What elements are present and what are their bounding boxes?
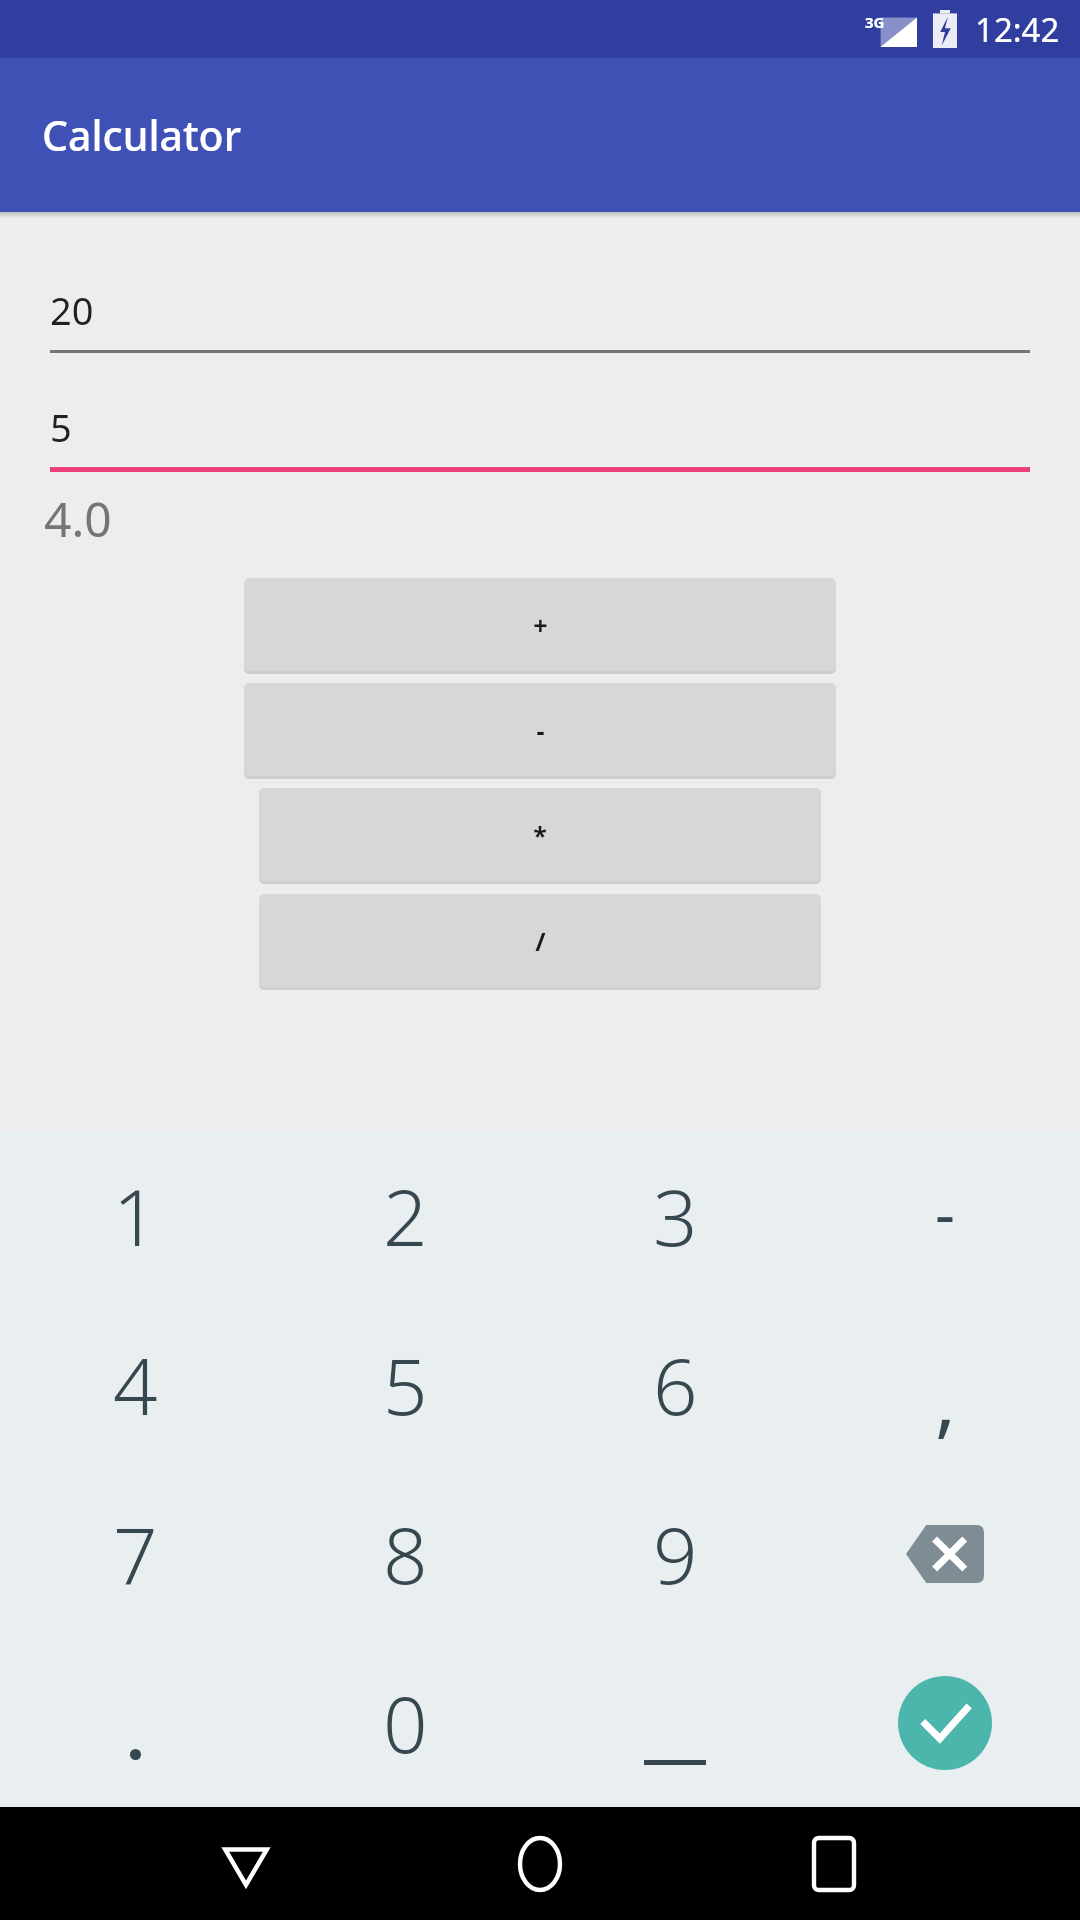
button[interactable]: -	[244, 683, 836, 776]
button[interactable]: 3	[540, 1131, 810, 1300]
staticText: 20	[50, 284, 94, 336]
staticText: ,	[935, 1346, 956, 1452]
staticText: 9	[653, 1501, 698, 1607]
button[interactable]: 0	[270, 1638, 540, 1807]
button[interactable]: Backspace	[810, 1469, 1080, 1638]
staticText: 5	[50, 401, 72, 453]
button[interactable]: 7	[0, 1469, 270, 1638]
staticText: Calculator	[42, 107, 242, 163]
staticText: 7	[113, 1501, 158, 1607]
staticText: 12:42	[975, 7, 1060, 52]
button[interactable]: 4	[0, 1300, 270, 1469]
button[interactable]: 1	[0, 1131, 270, 1300]
staticText: -	[935, 1170, 955, 1254]
staticText: /	[535, 924, 546, 958]
button[interactable]: Enter	[810, 1638, 1080, 1807]
button[interactable]	[0, 1638, 270, 1807]
staticText: 4.0	[44, 486, 112, 551]
button[interactable]: *	[259, 788, 821, 881]
button[interactable]: 9	[540, 1469, 810, 1638]
button[interactable]: 5	[50, 401, 1030, 472]
staticText: 0	[383, 1670, 428, 1776]
button[interactable]: Back	[198, 1816, 294, 1912]
staticText: *	[533, 818, 547, 852]
button[interactable]: 5	[270, 1300, 540, 1469]
button[interactable]: /	[259, 894, 821, 987]
button[interactable]: ,	[810, 1300, 1080, 1469]
button[interactable]: 20	[50, 284, 1030, 353]
staticText: 5	[383, 1332, 428, 1438]
button[interactable]: +	[244, 578, 836, 671]
button[interactable]: Recent apps	[786, 1816, 882, 1912]
staticText: 3G	[865, 12, 885, 32]
button[interactable]: 6	[540, 1300, 810, 1469]
button[interactable]: 2	[270, 1131, 540, 1300]
staticText: +	[533, 608, 548, 642]
staticText: 2	[383, 1163, 428, 1269]
staticText: 8	[383, 1501, 428, 1607]
button[interactable]: 8	[270, 1469, 540, 1638]
staticText: 1	[113, 1163, 158, 1269]
button[interactable]: Space	[540, 1638, 810, 1807]
staticText: 3	[653, 1163, 698, 1269]
staticText: -	[536, 713, 545, 747]
staticText: 4	[113, 1332, 158, 1438]
button[interactable]: -	[810, 1131, 1080, 1300]
staticText: 6	[653, 1332, 698, 1438]
button[interactable]: Home	[492, 1816, 588, 1912]
